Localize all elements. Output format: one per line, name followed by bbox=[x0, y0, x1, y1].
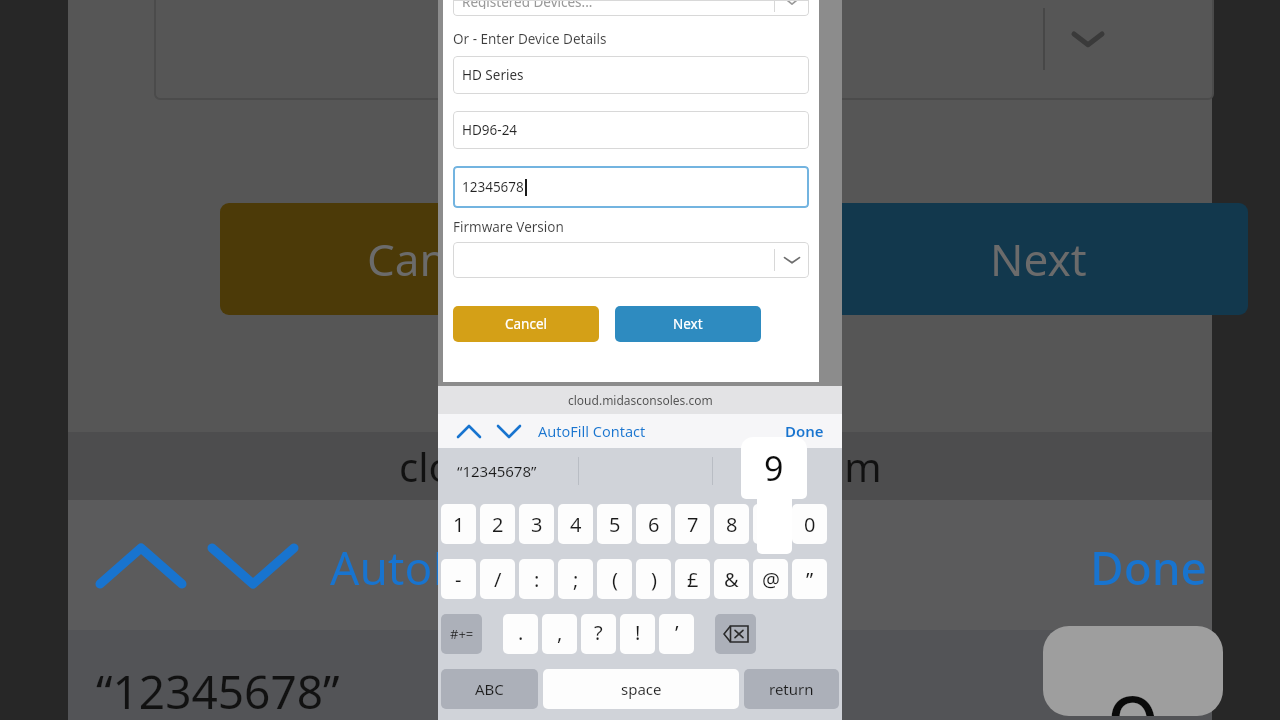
staticText: Next bbox=[990, 229, 1087, 289]
staticText: ) bbox=[651, 566, 657, 593]
button[interactable]: 3 bbox=[519, 504, 554, 544]
button[interactable]: ’ bbox=[659, 614, 694, 654]
staticText: ? bbox=[594, 619, 603, 646]
button[interactable]: Open dropdown bbox=[453, 242, 809, 278]
staticText: 2 bbox=[492, 511, 504, 538]
staticText: - bbox=[455, 566, 462, 593]
button[interactable]: @ bbox=[753, 559, 788, 599]
staticText: Cancel bbox=[505, 315, 548, 333]
staticText: 5 bbox=[609, 511, 621, 538]
staticText: cloud.midasconsoles.com bbox=[568, 392, 713, 408]
button[interactable]: 12345678 bbox=[453, 166, 809, 208]
button[interactable]: 0 bbox=[792, 504, 827, 544]
button[interactable]: Done bbox=[785, 421, 824, 441]
button[interactable]: Next bbox=[615, 306, 761, 342]
staticText: ( bbox=[612, 566, 618, 593]
staticText: Firmware Version bbox=[453, 218, 564, 236]
button[interactable]: HD Series bbox=[453, 56, 809, 94]
button[interactable]: 5 bbox=[597, 504, 632, 544]
staticText: HD Series bbox=[462, 66, 524, 84]
button[interactable]: Previous field bbox=[456, 424, 482, 439]
button[interactable]: Next field bbox=[496, 424, 522, 439]
staticText: space bbox=[621, 679, 662, 699]
button[interactable]: 9 bbox=[753, 504, 788, 544]
staticText: Done bbox=[1090, 536, 1207, 599]
button[interactable]: ; bbox=[558, 559, 593, 599]
staticText: Next bbox=[673, 315, 703, 333]
staticText: AutoFill Contact bbox=[538, 421, 646, 441]
button[interactable]: & bbox=[714, 559, 749, 599]
staticText: 3 bbox=[531, 511, 543, 538]
button[interactable]: cloud.midasconsoles.com bbox=[438, 386, 842, 414]
staticText: #+= bbox=[450, 625, 474, 643]
staticText: ! bbox=[635, 619, 641, 646]
button[interactable]: . bbox=[503, 614, 538, 654]
button[interactable]: - bbox=[441, 559, 476, 599]
staticText: / bbox=[494, 566, 502, 593]
button[interactable]: : bbox=[519, 559, 554, 599]
staticText: 0 bbox=[804, 511, 816, 538]
button[interactable]: 2 bbox=[480, 504, 515, 544]
staticText: “12345678” bbox=[96, 660, 340, 720]
staticText: Cancel bbox=[367, 229, 504, 289]
staticText: 12345678 bbox=[462, 178, 524, 196]
staticText: 9 bbox=[1107, 664, 1160, 716]
button[interactable]: ) bbox=[636, 559, 671, 599]
staticText: “12345678” bbox=[457, 461, 537, 481]
staticText: Registered Devices... bbox=[462, 0, 593, 9]
staticText: ABC bbox=[475, 679, 504, 699]
button[interactable]: Registered Devices... bbox=[453, 0, 809, 16]
staticText: & bbox=[724, 566, 739, 593]
button[interactable]: / bbox=[480, 559, 515, 599]
staticText: ” bbox=[806, 566, 814, 593]
staticText: . bbox=[518, 619, 524, 646]
staticText: £ bbox=[687, 566, 699, 593]
button[interactable]: ” bbox=[792, 559, 827, 599]
button[interactable]: , bbox=[542, 614, 577, 654]
staticText: 8 bbox=[726, 511, 738, 538]
staticText: 7 bbox=[687, 511, 699, 538]
button[interactable]: return bbox=[744, 669, 839, 709]
other: Open dropdown bbox=[775, 250, 809, 270]
staticText: HD96-24 bbox=[462, 121, 518, 139]
button[interactable]: #+= bbox=[441, 614, 482, 654]
staticText: : bbox=[534, 566, 540, 593]
staticText: AutoFill Contact bbox=[330, 536, 671, 599]
staticText: , bbox=[557, 619, 563, 646]
staticText: 1 bbox=[453, 511, 465, 538]
staticText: ; bbox=[573, 566, 579, 593]
staticText: 9 bbox=[764, 445, 784, 491]
button[interactable]: ! bbox=[620, 614, 655, 654]
button[interactable]: 4 bbox=[558, 504, 593, 544]
staticText: @ bbox=[762, 566, 780, 593]
staticText: Done bbox=[785, 421, 824, 441]
button[interactable]: ? bbox=[581, 614, 616, 654]
button[interactable]: 1 bbox=[441, 504, 476, 544]
button[interactable]: 7 bbox=[675, 504, 710, 544]
button[interactable]: space bbox=[543, 669, 739, 709]
button[interactable]: ( bbox=[597, 559, 632, 599]
button[interactable]: 6 bbox=[636, 504, 671, 544]
button[interactable]: Cancel bbox=[453, 306, 599, 342]
button[interactable]: 8 bbox=[714, 504, 749, 544]
button[interactable]: ABC bbox=[441, 669, 538, 709]
button[interactable]: £ bbox=[675, 559, 710, 599]
staticText: Or - Enter Device Details bbox=[453, 30, 607, 48]
button[interactable]: HD96-24 bbox=[453, 111, 809, 149]
staticText: ’ bbox=[675, 619, 679, 646]
staticText: cloud.midasconsoles.com bbox=[399, 439, 882, 493]
staticText: 4 bbox=[570, 511, 582, 538]
button[interactable]: AutoFill Contact bbox=[538, 421, 646, 441]
staticText: 6 bbox=[648, 511, 660, 538]
button[interactable]: Backspace bbox=[715, 614, 756, 654]
staticText: return bbox=[769, 679, 814, 699]
